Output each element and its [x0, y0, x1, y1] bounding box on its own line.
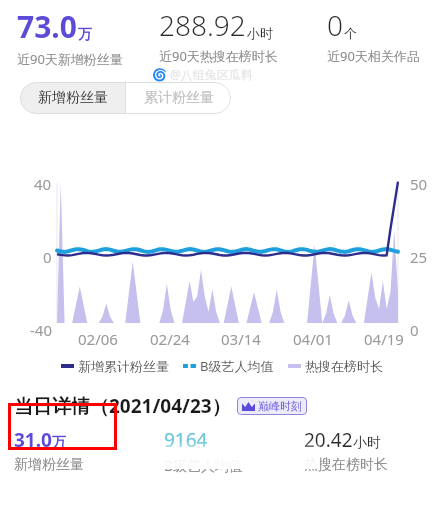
- staticText: 🌀 @八组兔区瓜料: [152, 66, 253, 82]
- staticText: 万: [52, 434, 66, 452]
- staticText: 02/24: [150, 329, 190, 349]
- staticText: 热搜在榜时长: [305, 358, 383, 374]
- staticText: 巅峰时刻: [258, 399, 302, 413]
- button[interactable]: 累计粉丝量: [126, 82, 231, 114]
- staticText: 31.0: [14, 427, 52, 453]
- staticText: 近90天热搜在榜时长: [159, 47, 278, 65]
- staticText: 73.0: [17, 6, 77, 47]
- staticText: 0: [410, 320, 419, 340]
- staticText: 02/06: [78, 329, 118, 349]
- staticText: 20.42: [304, 427, 353, 453]
- staticText: 小时: [353, 434, 381, 452]
- staticText: 当日详情（2021/04/23）: [14, 393, 231, 419]
- staticText: 累计粉丝量: [144, 89, 214, 107]
- staticText: 万: [78, 26, 92, 44]
- staticText: B级艺人均值: [164, 456, 244, 475]
- staticText: 小时: [247, 25, 273, 41]
- staticText: 9164: [164, 427, 208, 453]
- staticText: 40: [34, 174, 52, 194]
- staticText: B级艺人均值: [200, 357, 274, 375]
- staticText: 新增粉丝量: [14, 456, 84, 474]
- staticText: -40: [30, 320, 52, 340]
- staticText: 新增累计粉丝量: [78, 358, 169, 374]
- staticText: 50: [410, 174, 428, 194]
- staticText: 热搜在榜时长: [304, 456, 388, 474]
- staticText: 近90天新增粉丝量: [17, 50, 123, 68]
- button[interactable]: 巅峰时刻: [242, 399, 302, 413]
- staticText: 0: [43, 247, 52, 267]
- staticText: 0: [327, 6, 343, 44]
- staticText: 个: [344, 25, 357, 41]
- staticText: 03/14: [221, 329, 261, 349]
- button[interactable]: 新增粉丝量: [20, 82, 125, 114]
- staticText: 288.92: [159, 6, 246, 44]
- staticText: 近90天相关作品: [327, 47, 420, 65]
- staticText: 25: [410, 247, 428, 267]
- staticText: 新增粉丝量: [38, 89, 108, 107]
- staticText: 04/01: [293, 329, 333, 349]
- staticText: 04/19: [364, 329, 404, 349]
